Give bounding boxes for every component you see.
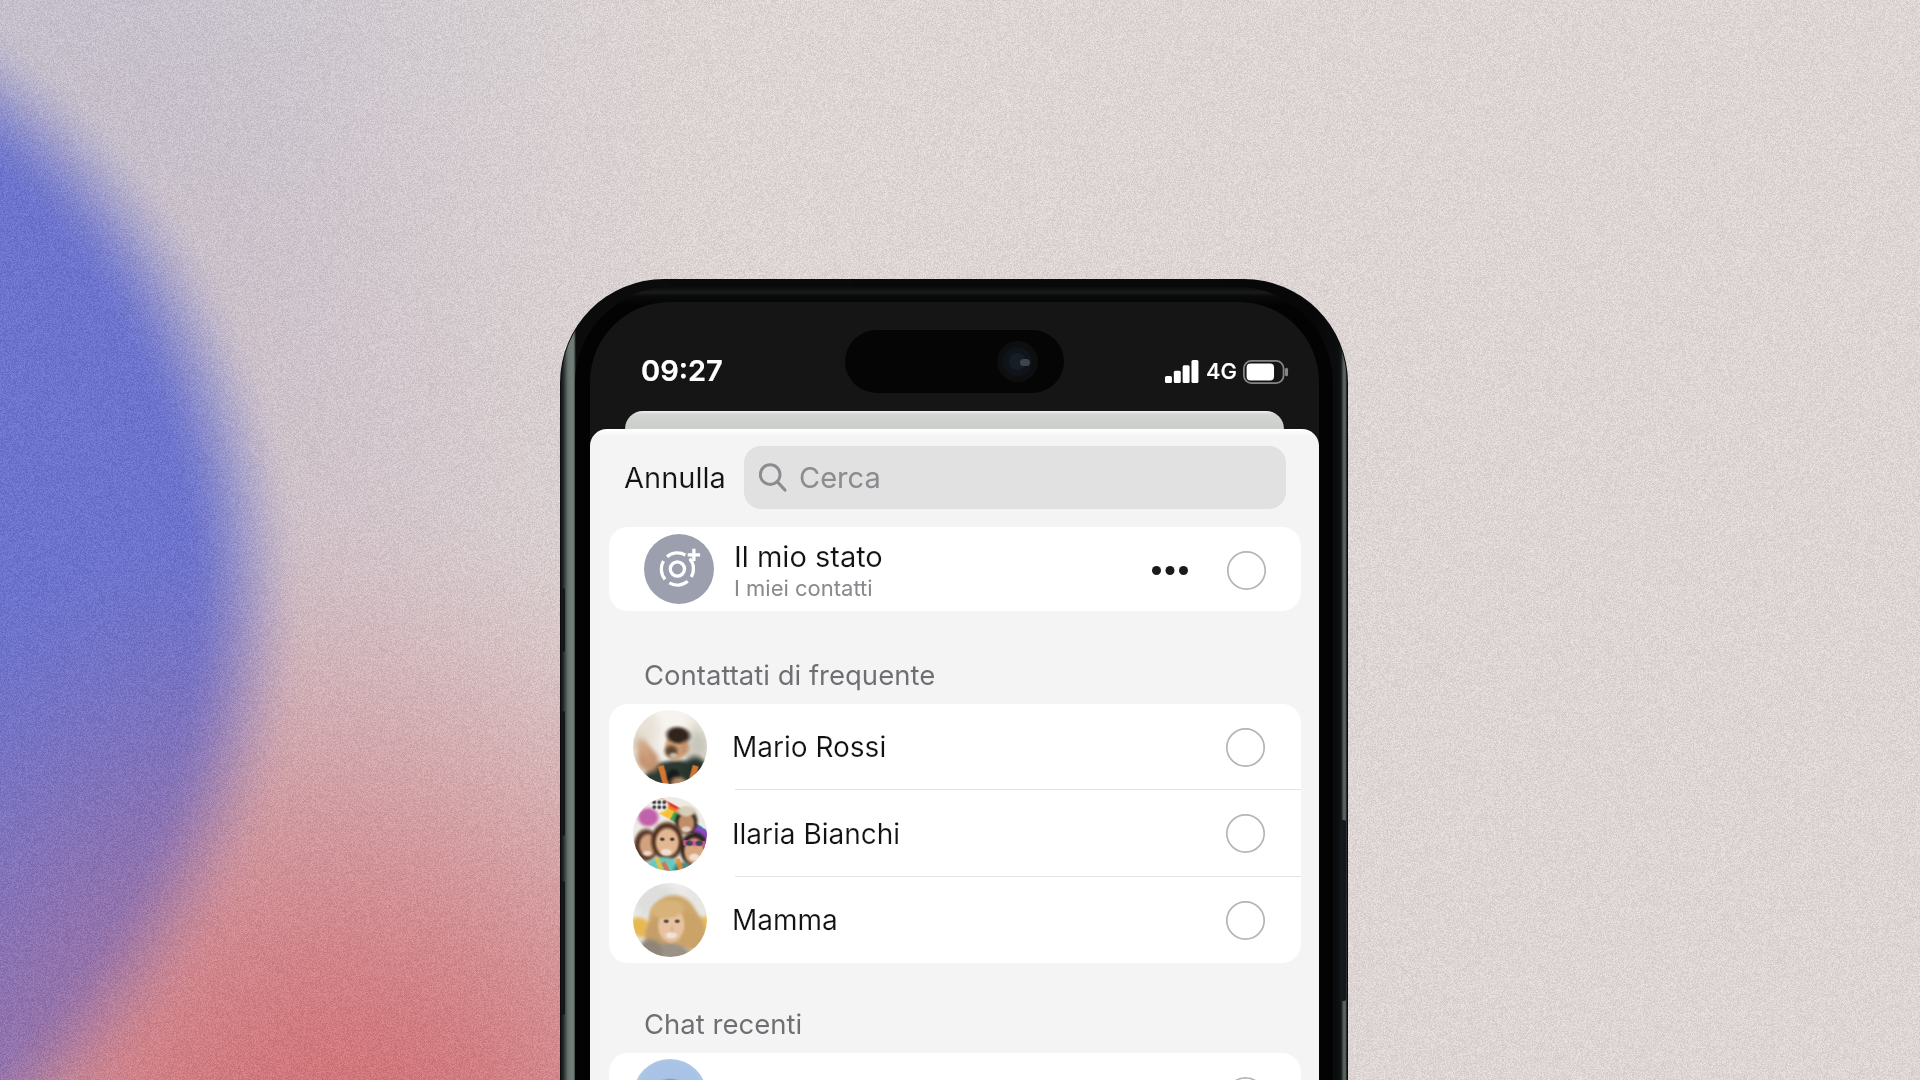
staticText: 4G — [1206, 358, 1237, 385]
button[interactable]: Mamma — [609, 877, 1301, 963]
staticText: Mario Rossi — [732, 730, 887, 764]
staticText: Cerca — [799, 460, 881, 495]
staticText: Mamma — [732, 903, 838, 937]
staticText: Il mio stato — [734, 539, 883, 574]
staticText: Contattati di frequente — [644, 658, 936, 691]
button[interactable]: Seleziona il mio stato — [1227, 551, 1266, 590]
staticText: 09:27 — [641, 353, 723, 388]
button[interactable]: Cerca — [744, 446, 1286, 509]
button[interactable]: Seleziona Mario Rossi — [1226, 728, 1265, 767]
button[interactable]: Seleziona Ilaria Bianchi — [1226, 814, 1265, 853]
button[interactable]: Annulla — [624, 460, 726, 495]
button[interactable]: Seleziona Luca Verdi — [1226, 1077, 1265, 1080]
button[interactable]: Ilaria Bianchi — [609, 790, 1301, 877]
staticText: I miei contatti — [734, 575, 873, 602]
staticText: Ilaria Bianchi — [732, 817, 901, 851]
button[interactable]: Seleziona Mamma — [1226, 901, 1265, 940]
button[interactable]: Altre opzioni — [1146, 546, 1194, 594]
staticText: Annulla — [624, 460, 726, 495]
button[interactable]: Luca Verdi — [609, 1053, 1301, 1080]
button[interactable]: Mario Rossi — [609, 704, 1301, 790]
staticText: Chat recenti — [644, 1007, 803, 1040]
button[interactable]: Il mio stato — [609, 527, 1301, 611]
